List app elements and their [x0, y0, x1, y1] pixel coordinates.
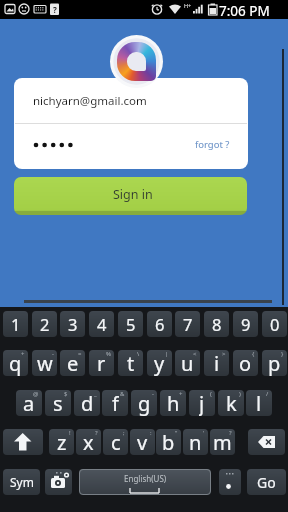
- button[interactable]: l: [246, 390, 272, 416]
- button[interactable]: w: [32, 350, 57, 376]
- staticText: 1: [11, 313, 21, 335]
- staticText: +: [21, 350, 25, 358]
- button[interactable]: n: [183, 429, 208, 455]
- button[interactable]: [45, 469, 72, 495]
- button[interactable]: j: [189, 390, 215, 416]
- staticText: ?: [229, 429, 232, 437]
- button[interactable]: b: [156, 429, 181, 455]
- button[interactable]: y: [147, 350, 172, 376]
- button[interactable]: k: [218, 390, 244, 416]
- staticText: forgot ?: [195, 138, 230, 151]
- button[interactable]: 5: [118, 311, 143, 337]
- button[interactable]: 4: [89, 311, 114, 337]
- button[interactable]: h: [160, 390, 186, 416]
- button[interactable]: v: [130, 429, 155, 455]
- staticText: h: [167, 390, 180, 416]
- staticText: l: [256, 390, 262, 416]
- staticText: }: [281, 350, 284, 358]
- staticText: k: [226, 390, 237, 416]
- staticText: |: [165, 350, 169, 358]
- staticText: -: [52, 350, 54, 358]
- button[interactable]: x: [76, 429, 101, 455]
- staticText: 9: [241, 313, 251, 335]
- staticText: 3: [68, 313, 78, 335]
- staticText: nichyarn@gmail.com: [33, 93, 147, 109]
- staticText: 0: [270, 313, 280, 335]
- button[interactable]: forgot ?: [195, 135, 237, 153]
- staticText: v: [137, 429, 148, 455]
- staticText: b: [162, 429, 175, 455]
- staticText: j: [199, 390, 205, 416]
- button[interactable]: 0: [262, 311, 287, 337]
- staticText: 8: [212, 313, 222, 335]
- button[interactable]: 8: [204, 311, 229, 337]
- button[interactable]: Go: [247, 469, 286, 495]
- button[interactable]: g: [131, 390, 157, 416]
- staticText: %: [106, 350, 111, 358]
- staticText: n: [189, 429, 202, 455]
- button[interactable]: z: [49, 429, 74, 455]
- staticText: 7: [183, 313, 193, 335]
- staticText: {: [252, 350, 255, 358]
- button[interactable]: m: [210, 429, 235, 455]
- staticText: /: [266, 390, 269, 398]
- button[interactable]: 2: [32, 311, 57, 337]
- staticText: z: [57, 429, 67, 455]
- button[interactable]: r: [89, 350, 114, 376]
- staticText: d: [81, 390, 94, 416]
- button[interactable]: s: [45, 390, 71, 416]
- button[interactable]: [248, 429, 285, 455]
- button[interactable]: p: [262, 350, 287, 376]
- staticText: e: [67, 350, 79, 376]
- staticText: =: [78, 350, 82, 358]
- button[interactable]: c: [103, 429, 128, 455]
- staticText: x: [83, 429, 94, 455]
- staticText: 4: [97, 313, 107, 335]
- staticText: $: [64, 390, 68, 398]
- button[interactable]: 1: [3, 311, 28, 337]
- staticText: ": [175, 429, 178, 437]
- staticText: t: [127, 350, 135, 376]
- button[interactable]: t: [118, 350, 143, 376]
- button[interactable]: 9: [233, 311, 258, 337]
- staticText: _: [94, 390, 97, 398]
- button[interactable]: Sign in: [14, 177, 247, 215]
- staticText: \: [137, 350, 140, 358]
- staticText: +: [179, 390, 183, 398]
- button[interactable]: u: [175, 350, 200, 376]
- staticText: !: [69, 429, 71, 437]
- staticText: c: [111, 429, 121, 455]
- button[interactable]: [219, 469, 241, 495]
- staticText: ?: [53, 4, 57, 15]
- staticText: o: [239, 350, 252, 376]
- button[interactable]: q: [3, 350, 28, 376]
- staticText: (: [210, 390, 212, 398]
- button[interactable]: d: [74, 390, 100, 416]
- staticText: Sym: [10, 474, 34, 490]
- button[interactable]: 7: [175, 311, 200, 337]
- staticText: @: [33, 390, 39, 398]
- button[interactable]: o: [233, 350, 258, 376]
- staticText: Go: [257, 473, 276, 492]
- button[interactable]: 6: [147, 311, 172, 337]
- staticText: y: [154, 350, 165, 376]
- staticText: 5: [126, 313, 136, 335]
- staticText: 6: [155, 313, 165, 335]
- button[interactable]: i: [204, 350, 229, 376]
- button[interactable]: English(US): [79, 469, 211, 495]
- staticText: ': [203, 429, 205, 437]
- button[interactable]: f: [102, 390, 128, 416]
- staticText: English(US): [124, 473, 167, 484]
- staticText: H+: [184, 2, 192, 9]
- button[interactable]: Sym: [3, 469, 40, 495]
- staticText: :: [150, 429, 152, 437]
- staticText: <: [193, 350, 197, 358]
- staticText: w: [37, 350, 53, 376]
- button[interactable]: a: [16, 390, 42, 416]
- staticText: p: [268, 350, 281, 376]
- staticText: 7:06 PM: [219, 2, 270, 20]
- staticText: s: [53, 390, 63, 416]
- button[interactable]: e: [60, 350, 85, 376]
- button[interactable]: 3: [60, 311, 85, 337]
- button[interactable]: [3, 429, 43, 455]
